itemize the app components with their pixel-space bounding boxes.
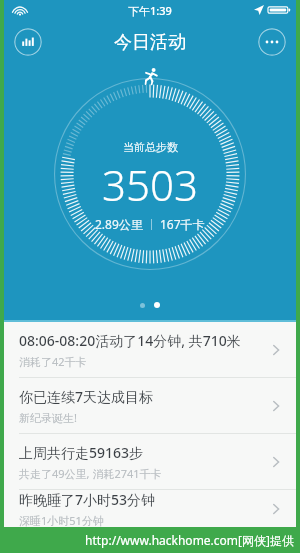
staticText: 今日活动	[114, 31, 186, 54]
staticText: 08:06-08:20活动了14分钟, 共710米	[19, 331, 241, 350]
staticText: 消耗了42千卡	[19, 354, 87, 369]
staticText: 深睡1小时51分钟	[19, 513, 104, 527]
button[interactable]: 上周共行走59163步	[4, 434, 296, 490]
staticText: 昨晚睡了7小时53分钟	[19, 490, 156, 509]
staticText: 新纪录诞生!	[19, 410, 77, 425]
staticText: 3503	[102, 156, 198, 213]
other: Activity	[140, 66, 160, 86]
button[interactable]: More options	[258, 28, 286, 56]
staticText: 167千卡	[160, 216, 205, 232]
staticText: 下午1:39	[128, 3, 172, 18]
staticText: 共走了49公里, 消耗2741千卡	[19, 466, 162, 481]
staticText: 你已连续7天达成目标	[19, 387, 154, 406]
staticText: 当前总步数	[123, 140, 178, 154]
button[interactable]: 昨晚睡了7小时53分钟	[4, 490, 296, 527]
button[interactable]: 你已连续7天达成目标	[4, 378, 296, 434]
staticText: 上周共行走59163步	[19, 443, 144, 462]
staticText: http://www.hackhome.com[网侠]提供	[85, 532, 294, 548]
staticText: 2.89公里	[95, 216, 143, 232]
button[interactable]: 08:06-08:20活动了14分钟, 共710米	[4, 322, 296, 378]
button[interactable]: Statistics	[14, 28, 42, 56]
